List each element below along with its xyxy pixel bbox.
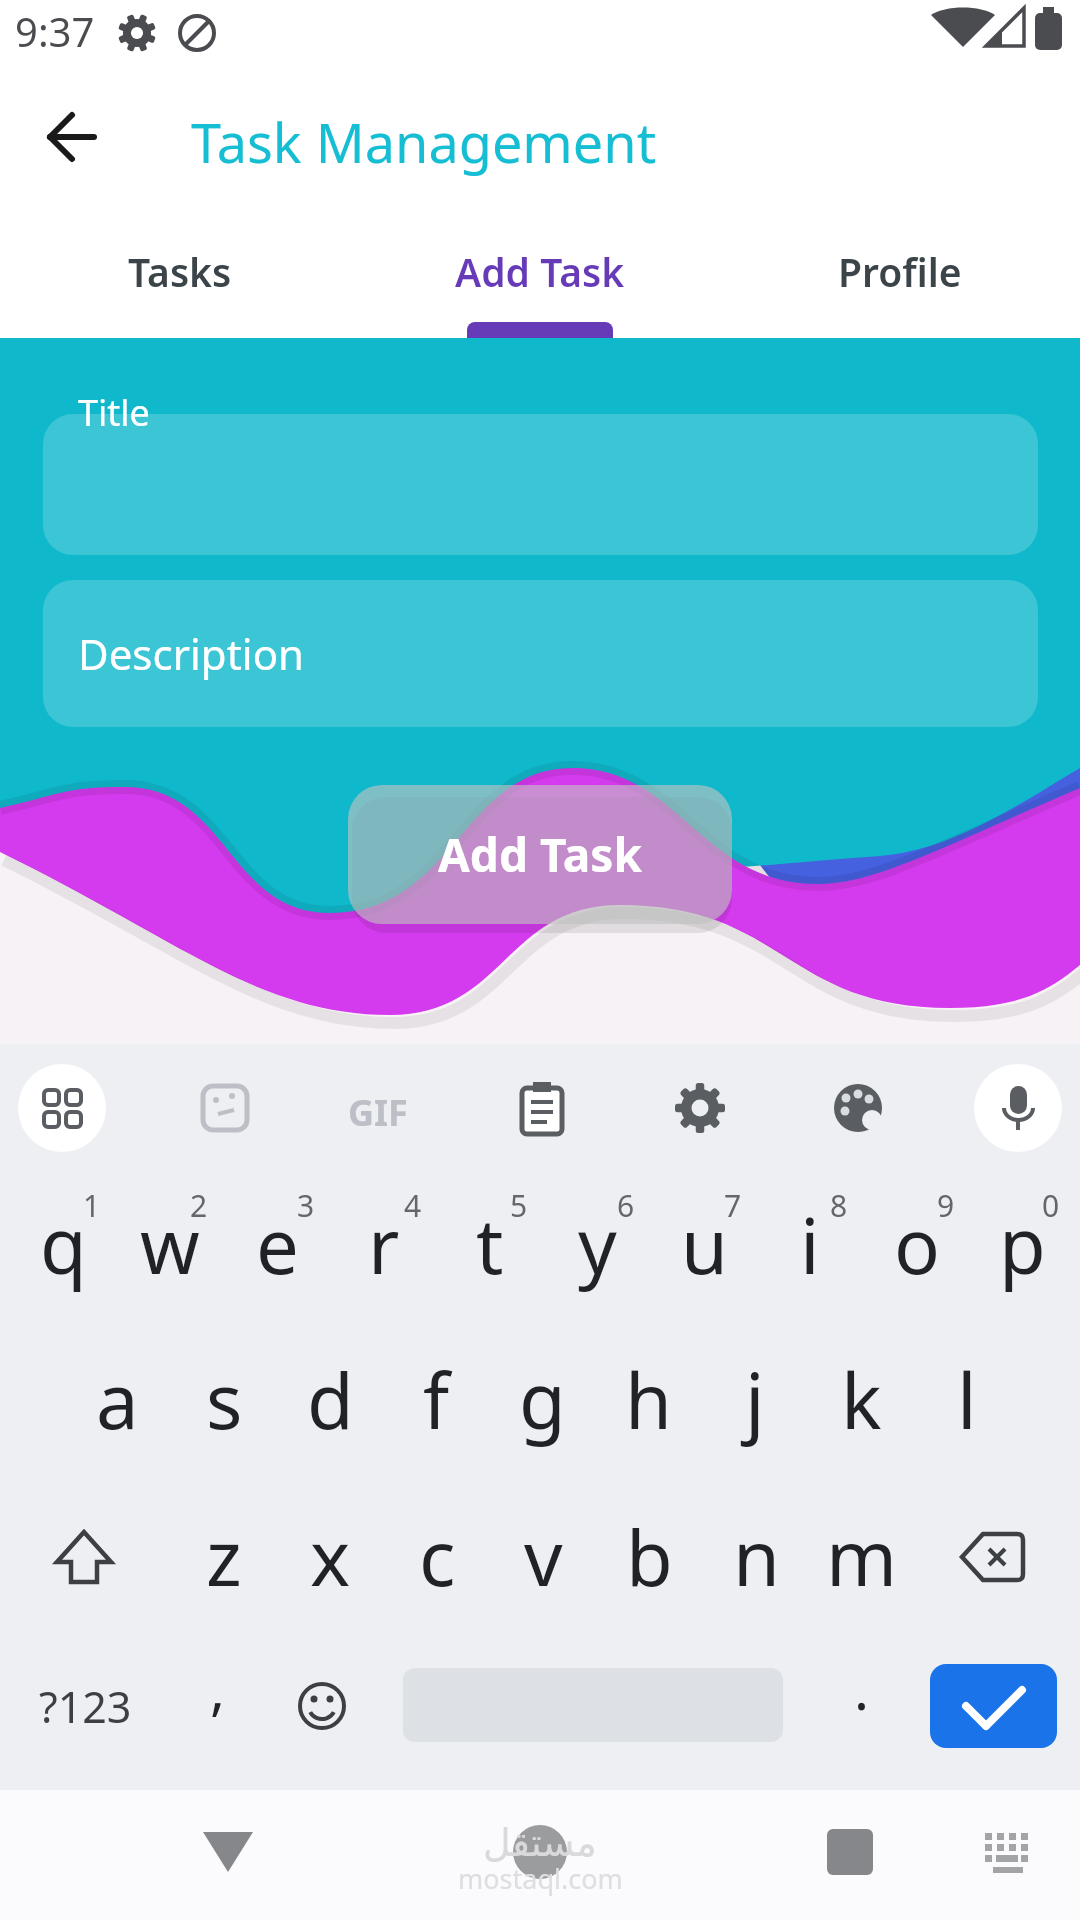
staticText: 6 [617, 1185, 635, 1226]
button[interactable] [656, 1064, 744, 1152]
staticText: z [206, 1505, 242, 1609]
staticText: Title [78, 388, 150, 437]
button[interactable] [360, 210, 720, 338]
button[interactable] [800, 1802, 900, 1902]
staticText: x [310, 1505, 351, 1609]
button[interactable]: v [490, 1480, 596, 1634]
button[interactable]: f [383, 1323, 489, 1477]
button[interactable] [269, 1644, 375, 1768]
staticText: 4 [404, 1185, 422, 1226]
staticText: Task Management [191, 105, 657, 179]
button[interactable]: k [808, 1323, 914, 1477]
button[interactable]: u [651, 1168, 757, 1322]
staticText: 9:37 [15, 4, 95, 58]
button[interactable]: g [489, 1323, 595, 1477]
button[interactable]: t [437, 1168, 543, 1322]
button[interactable]: j [702, 1323, 808, 1477]
staticText: 1 [83, 1185, 101, 1226]
staticText: f [423, 1348, 450, 1452]
button[interactable] [333, 1064, 421, 1152]
button[interactable] [0, 210, 360, 338]
button[interactable]: s [171, 1323, 277, 1477]
button[interactable] [814, 1064, 902, 1152]
staticText: 0 [1042, 1185, 1060, 1226]
button[interactable] [18, 1064, 106, 1152]
staticText: q [40, 1193, 87, 1297]
button[interactable] [165, 1644, 271, 1768]
button[interactable] [720, 210, 1080, 338]
button[interactable] [809, 1644, 915, 1768]
button[interactable]: o [864, 1168, 970, 1322]
staticText: v [524, 1505, 563, 1609]
button[interactable] [496, 1064, 584, 1152]
button[interactable] [179, 1064, 267, 1152]
button[interactable]: Description [43, 580, 1038, 727]
button[interactable]: q [10, 1168, 116, 1322]
button[interactable]: z [171, 1480, 277, 1634]
staticText: mostaql.com [458, 1860, 623, 1897]
staticText: h [625, 1348, 672, 1452]
button[interactable]: n [703, 1480, 809, 1634]
staticText: Tasks [128, 245, 232, 298]
button[interactable] [938, 1495, 1050, 1619]
staticText: t [476, 1193, 504, 1297]
staticText: a [96, 1348, 139, 1452]
staticText: 2 [190, 1185, 208, 1226]
button[interactable] [30, 1644, 140, 1768]
staticText: i [800, 1193, 820, 1297]
button[interactable]: m [809, 1480, 915, 1634]
staticText: n [733, 1505, 780, 1609]
staticText: k [841, 1348, 882, 1452]
staticText: s [206, 1348, 243, 1452]
staticText: Add Task [438, 823, 642, 886]
staticText: Profile [838, 245, 962, 298]
staticText: j [745, 1348, 765, 1452]
staticText: مستقل [483, 1821, 597, 1865]
button[interactable]: h [595, 1323, 701, 1477]
button[interactable]: w [117, 1168, 223, 1322]
button[interactable]: c [384, 1480, 490, 1634]
staticText: o [894, 1193, 940, 1297]
button[interactable]: d [277, 1323, 383, 1477]
button[interactable]: e [224, 1168, 330, 1322]
staticText: . [854, 1650, 870, 1726]
staticText: 9 [937, 1185, 955, 1226]
staticText: e [256, 1193, 299, 1297]
button[interactable] [178, 1802, 278, 1902]
staticText: , [210, 1650, 226, 1726]
button[interactable]: a [64, 1323, 170, 1477]
button[interactable] [490, 1802, 590, 1902]
staticText: 3 [297, 1185, 315, 1226]
button[interactable]: Add Task [348, 785, 732, 924]
button[interactable] [29, 95, 113, 179]
staticText: 5 [510, 1185, 528, 1226]
staticText: r [368, 1193, 400, 1297]
button[interactable]: y [544, 1168, 650, 1322]
staticText: l [957, 1348, 977, 1452]
button[interactable] [43, 414, 1038, 555]
staticText: ?123 [39, 1677, 132, 1736]
staticText: y [578, 1193, 617, 1297]
staticText: b [626, 1505, 673, 1609]
button[interactable] [974, 1064, 1062, 1152]
button[interactable] [30, 1495, 140, 1619]
staticText: Add Task [455, 245, 625, 298]
button[interactable]: p [969, 1168, 1075, 1322]
button[interactable]: l [914, 1323, 1020, 1477]
button[interactable]: r [331, 1168, 437, 1322]
button[interactable] [930, 1664, 1057, 1748]
button[interactable]: b [596, 1480, 702, 1634]
staticText: w [140, 1193, 200, 1297]
button[interactable]: x [277, 1480, 383, 1634]
button[interactable]: i [757, 1168, 863, 1322]
staticText: g [519, 1348, 566, 1452]
staticText: u [681, 1193, 728, 1297]
staticText: m [826, 1505, 898, 1609]
staticText: 7 [724, 1185, 742, 1226]
staticText: p [999, 1193, 1046, 1297]
staticText: d [307, 1348, 354, 1452]
staticText: c [419, 1505, 456, 1609]
staticText: 8 [830, 1185, 848, 1226]
staticText: GIF [348, 1088, 408, 1137]
